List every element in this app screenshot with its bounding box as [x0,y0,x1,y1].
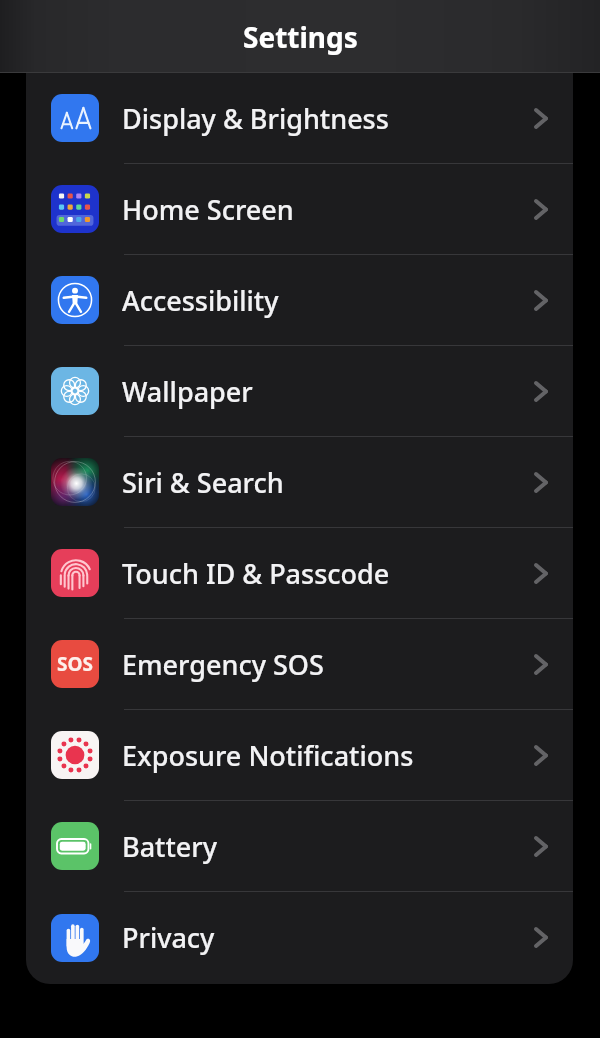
button[interactable]: Exposure Notifications [26,710,573,801]
other: Open [534,836,548,857]
button[interactable]: Siri & Search [26,437,573,528]
staticText: Privacy [122,919,534,956]
other: Open [534,199,548,220]
button[interactable]: Touch ID & Passcode [26,528,573,619]
staticText: Accessibility [122,282,534,319]
staticText: Battery [122,828,534,865]
other: Open [534,381,548,402]
staticText: Home Screen [122,191,534,228]
button[interactable]: Emergency SOS [26,619,573,710]
other: Open [534,290,548,311]
button[interactable]: Privacy [26,892,573,983]
staticText: SOS [57,651,93,677]
staticText: Exposure Notifications [122,737,534,774]
staticText: Emergency SOS [122,646,534,683]
other: Open [534,108,548,129]
other: Open [534,472,548,493]
staticText: Wallpaper [122,373,534,410]
other: Open [534,654,548,675]
other: Open [534,563,548,584]
button[interactable]: Accessibility [26,255,573,346]
staticText: Siri & Search [122,464,534,501]
staticText: Display & Brightness [122,100,534,137]
button[interactable]: Display & Brightness [26,73,573,164]
other: Open [534,927,548,948]
other: Open [534,745,548,766]
staticText: Touch ID & Passcode [122,555,534,592]
staticText: Settings [243,18,358,56]
button[interactable]: Battery [26,801,573,892]
button[interactable]: Wallpaper [26,346,573,437]
button[interactable]: Home Screen [26,164,573,255]
